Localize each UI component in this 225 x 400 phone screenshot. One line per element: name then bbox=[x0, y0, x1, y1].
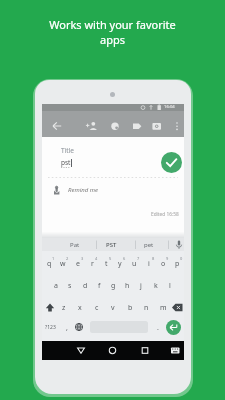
staticText: x bbox=[78, 303, 82, 313]
staticText: j bbox=[140, 281, 142, 291]
staticText: z bbox=[62, 303, 66, 313]
staticText: ... bbox=[108, 249, 112, 254]
staticText: e bbox=[76, 259, 80, 269]
button[interactable] bbox=[42, 111, 184, 137]
staticText: p bbox=[175, 259, 180, 269]
staticText: 7 bbox=[137, 256, 140, 261]
button[interactable] bbox=[42, 137, 184, 236]
staticText: 5 bbox=[109, 256, 112, 261]
staticText: 4 bbox=[95, 256, 98, 261]
staticText: q bbox=[47, 259, 52, 269]
staticText: l bbox=[169, 281, 171, 291]
staticText: d bbox=[83, 281, 88, 291]
button[interactable]: PST bbox=[99, 238, 123, 251]
staticText: g bbox=[111, 281, 116, 291]
staticText: a bbox=[54, 281, 58, 291]
staticText: v bbox=[111, 303, 115, 313]
staticText: i bbox=[148, 259, 150, 269]
button[interactable] bbox=[166, 320, 181, 335]
staticText: y bbox=[118, 259, 122, 269]
staticText: , bbox=[66, 323, 68, 333]
staticText: Title bbox=[61, 146, 74, 155]
staticText: c bbox=[95, 303, 99, 313]
staticText: 6 bbox=[123, 256, 126, 261]
staticText: apps bbox=[100, 32, 125, 47]
staticText: pet bbox=[144, 241, 154, 249]
staticText: f bbox=[98, 281, 101, 291]
staticText: 0 bbox=[180, 256, 183, 261]
staticText: ?123 bbox=[45, 324, 56, 331]
staticText: b bbox=[128, 303, 133, 313]
staticText: n bbox=[144, 303, 149, 313]
staticText: Works with your favorite bbox=[49, 17, 176, 32]
staticText: o bbox=[161, 259, 166, 269]
staticText: 16:04 bbox=[164, 104, 175, 110]
button[interactable]: Pat bbox=[61, 238, 88, 251]
button[interactable]: pet bbox=[137, 238, 161, 251]
staticText: 3 bbox=[81, 256, 84, 261]
button[interactable] bbox=[72, 343, 90, 358]
staticText: 2 bbox=[66, 256, 69, 261]
staticText: . bbox=[157, 323, 159, 333]
staticText: r bbox=[91, 259, 94, 269]
staticText: u bbox=[132, 259, 137, 269]
staticText: k bbox=[154, 281, 158, 291]
staticText: t bbox=[105, 259, 108, 269]
staticText: Edited 16:58 bbox=[151, 211, 179, 218]
staticText: pst bbox=[61, 158, 71, 167]
staticText: 1 bbox=[52, 256, 55, 261]
button[interactable] bbox=[136, 343, 154, 358]
staticText: PST bbox=[106, 241, 117, 249]
staticText: 8 bbox=[152, 256, 155, 261]
button[interactable] bbox=[104, 343, 122, 358]
button[interactable] bbox=[161, 152, 182, 173]
button[interactable] bbox=[50, 183, 170, 197]
staticText: Remind me bbox=[68, 186, 98, 194]
staticText: 9 bbox=[166, 256, 169, 261]
staticText: m bbox=[160, 303, 167, 313]
staticText: s bbox=[68, 281, 72, 291]
staticText: w bbox=[60, 259, 66, 269]
staticText: Pat bbox=[70, 241, 80, 249]
staticText: h bbox=[125, 281, 130, 291]
